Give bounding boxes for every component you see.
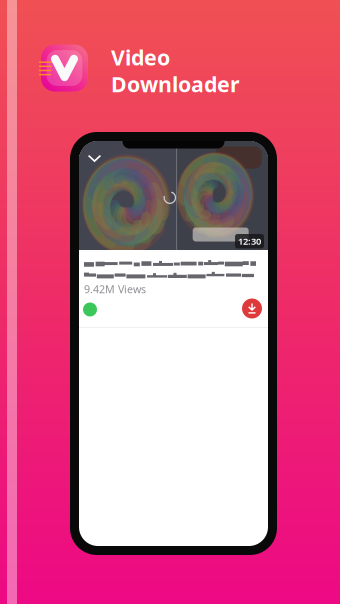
button[interactable]: Download video xyxy=(242,298,262,318)
staticText: 12:30 xyxy=(238,235,261,247)
staticText: Video Downloader xyxy=(111,43,240,98)
staticText: 9.42M Views xyxy=(84,282,146,296)
